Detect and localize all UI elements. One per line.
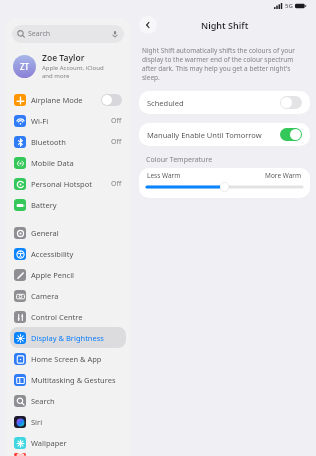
button[interactable]: Mobile Data bbox=[10, 152, 126, 173]
button[interactable]: Notifications bbox=[10, 453, 126, 456]
button[interactable]: Scheduled bbox=[139, 91, 310, 114]
button[interactable]: Back bbox=[139, 16, 157, 34]
staticText: Zoe Taylor bbox=[42, 52, 85, 64]
button[interactable]: ZT bbox=[6, 49, 130, 83]
staticText: Home Screen & App Library bbox=[31, 354, 122, 364]
staticText: Camera bbox=[31, 291, 59, 301]
button[interactable]: Wallpaper bbox=[10, 432, 126, 453]
button[interactable]: Accessibility bbox=[10, 243, 126, 264]
staticText: Apple Account, iCloud bbox=[42, 64, 104, 72]
staticText: Off bbox=[111, 116, 122, 126]
staticText: Personal Hotspot bbox=[31, 179, 92, 189]
staticText: Siri bbox=[31, 417, 43, 427]
staticText: Accessibility bbox=[31, 249, 74, 259]
other: Manually Enable Until Tomorrow bbox=[280, 128, 302, 141]
other: Scheduled bbox=[280, 96, 302, 109]
staticText: Bluetooth bbox=[31, 137, 66, 147]
button[interactable]: Search bbox=[12, 25, 124, 43]
button[interactable]: Battery bbox=[10, 194, 126, 215]
button[interactable]: Multitasking & Gestures bbox=[10, 369, 126, 390]
staticText: More Warm bbox=[265, 171, 302, 180]
staticText: Airplane Mode bbox=[31, 95, 83, 105]
staticText: Battery bbox=[31, 200, 57, 210]
button[interactable]: Home Screen & App Library bbox=[10, 348, 126, 369]
staticText: Off bbox=[111, 137, 122, 147]
staticText: Mobile Data bbox=[31, 158, 74, 168]
staticText: Off bbox=[111, 179, 122, 189]
staticText: Night Shift bbox=[201, 19, 249, 31]
button[interactable]: Personal Hotspot bbox=[10, 173, 126, 194]
staticText: 5G bbox=[285, 2, 293, 10]
staticText: and more bbox=[42, 72, 70, 80]
button[interactable]: Display & Brightness bbox=[10, 327, 126, 348]
button[interactable]: Less Warm bbox=[139, 168, 310, 198]
button[interactable]: Control Centre bbox=[10, 306, 126, 327]
staticText: Less Warm bbox=[147, 171, 181, 180]
staticText: Wi-Fi bbox=[31, 116, 49, 126]
staticText: Apple Pencil bbox=[31, 270, 75, 280]
staticText: Search bbox=[28, 29, 51, 39]
staticText: Night Shift automatically shifts the col… bbox=[142, 46, 307, 82]
staticText: Manually Enable Until Tomorrow bbox=[147, 130, 262, 140]
button[interactable]: General bbox=[10, 222, 126, 243]
button[interactable]: Wi-Fi bbox=[10, 110, 126, 131]
button[interactable]: Airplane Mode bbox=[10, 89, 126, 110]
button[interactable]: Toggle bbox=[101, 94, 122, 106]
staticText: Display & Brightness bbox=[31, 333, 104, 343]
staticText: Colour Temperature bbox=[146, 155, 213, 165]
staticText: Multitasking & Gestures bbox=[31, 375, 116, 385]
staticText: Search bbox=[31, 396, 55, 406]
staticText: Control Centre bbox=[31, 312, 83, 322]
button[interactable]: Camera bbox=[10, 285, 126, 306]
button[interactable]: Bluetooth bbox=[10, 131, 126, 152]
button[interactable]: Siri bbox=[10, 411, 126, 432]
button[interactable]: Search bbox=[10, 390, 126, 411]
staticText: ZT bbox=[20, 61, 30, 72]
button[interactable]: Apple Pencil bbox=[10, 264, 126, 285]
button[interactable]: Manually Enable Until Tomorrow bbox=[139, 123, 310, 146]
staticText: General bbox=[31, 228, 59, 238]
staticText: Wallpaper bbox=[31, 438, 67, 448]
staticText: Scheduled bbox=[147, 98, 184, 108]
